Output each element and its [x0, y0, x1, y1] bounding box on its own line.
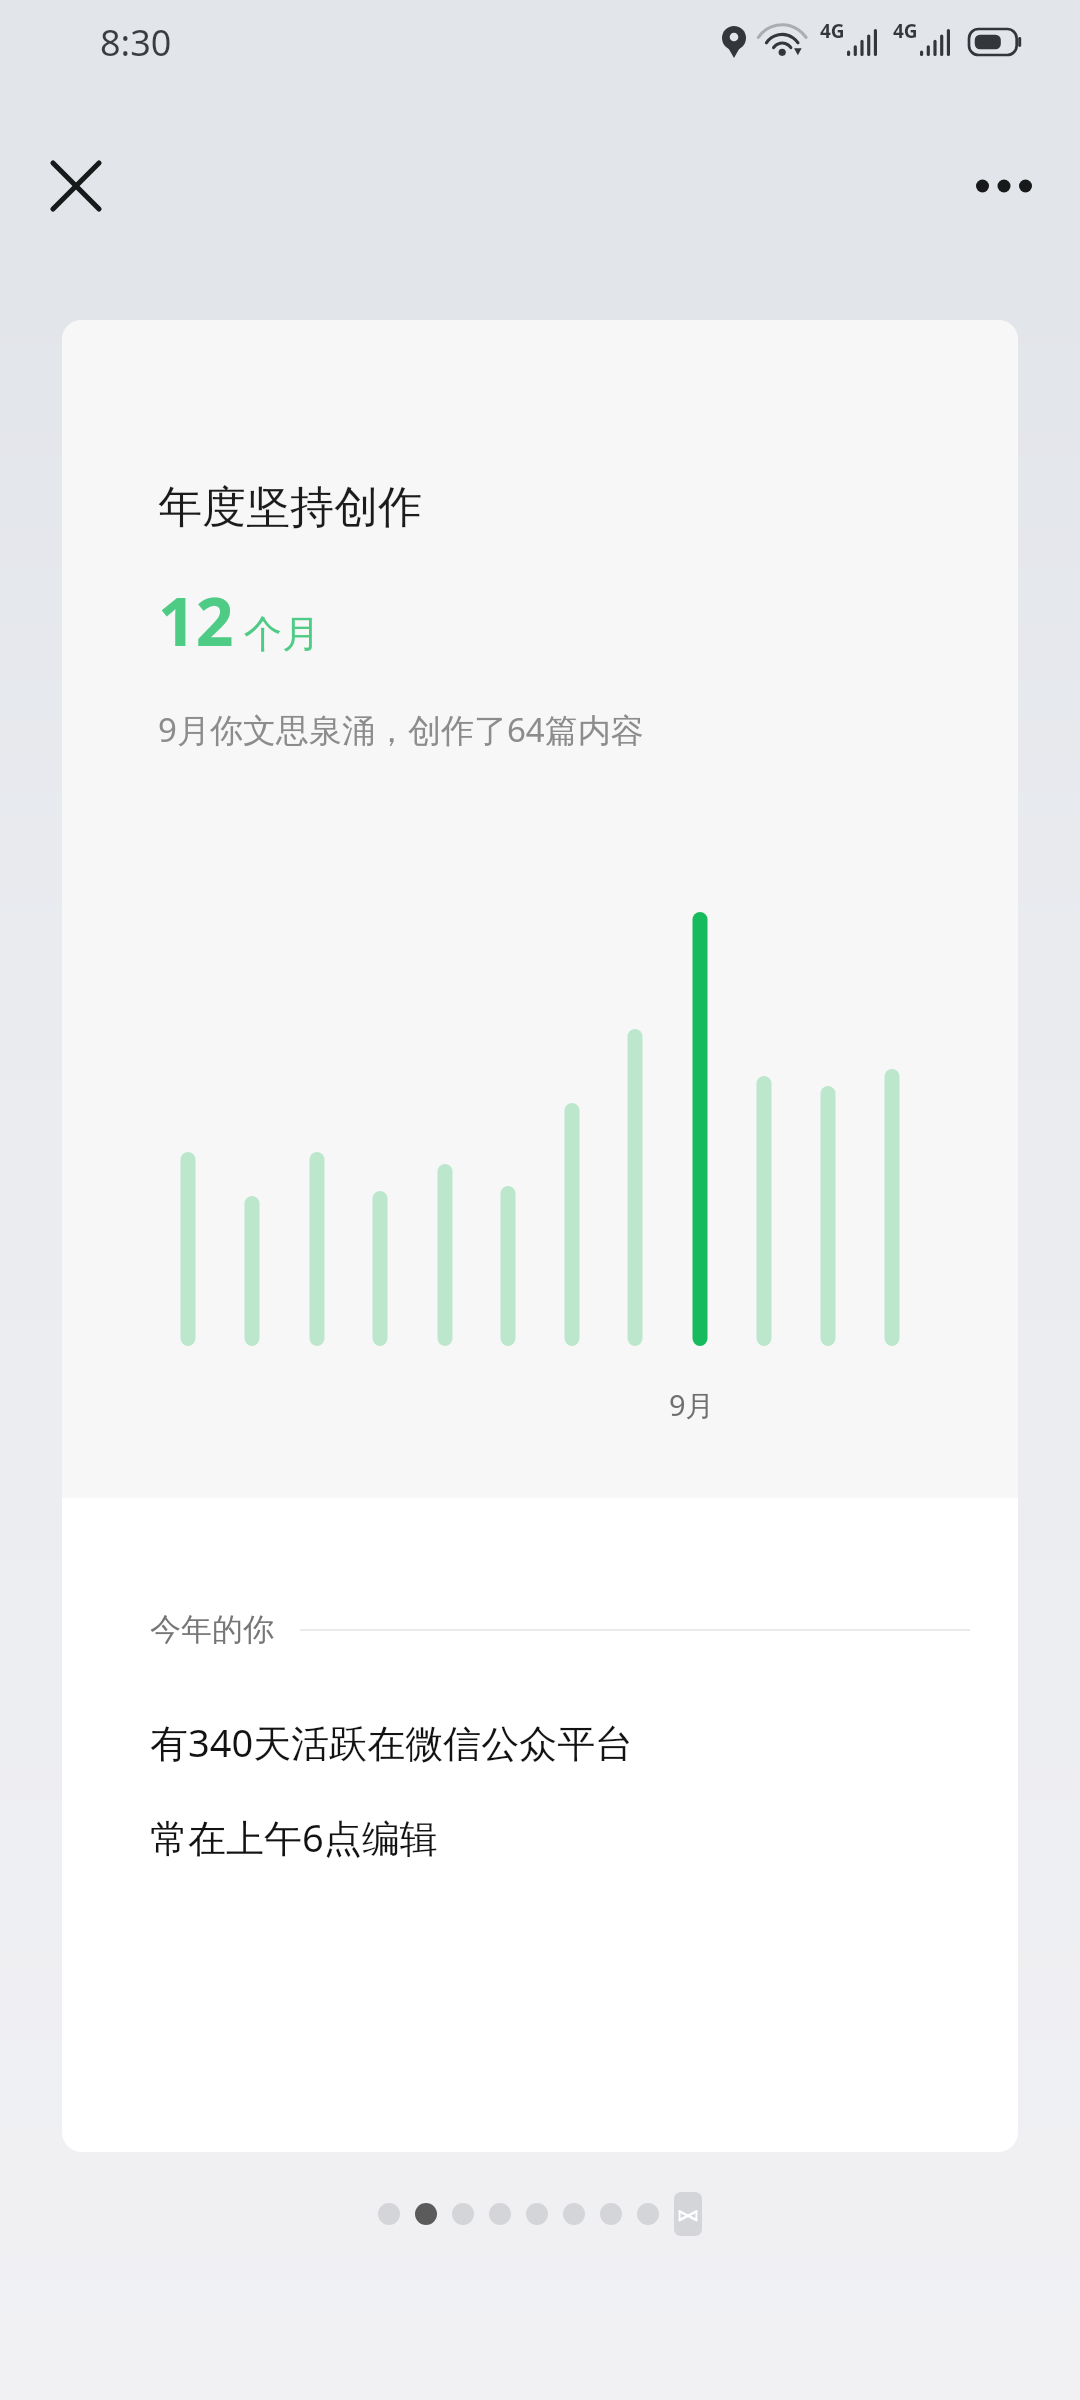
button[interactable]: Page 7	[600, 2203, 622, 2225]
staticText: 今年的你	[150, 1610, 274, 1649]
button[interactable]: Page 6	[563, 2203, 585, 2225]
staticText: 12	[158, 575, 234, 665]
button[interactable]: Page 1	[378, 2203, 400, 2225]
staticText: 个月	[244, 610, 320, 658]
staticText: 有340天活跃在微信公众平台	[150, 1716, 634, 1768]
button[interactable]: Page 3	[452, 2203, 474, 2225]
button[interactable]: More options	[956, 138, 1052, 234]
button[interactable]: Close	[28, 138, 124, 234]
button[interactable]: Page 5	[526, 2203, 548, 2225]
staticText: 常在上午6点编辑	[150, 1811, 438, 1863]
button[interactable]: 年度坚持创作	[62, 320, 1018, 2152]
button[interactable]: Gift card	[674, 2192, 702, 2236]
button[interactable]: Page 4	[489, 2203, 511, 2225]
staticText: 4G	[893, 18, 918, 44]
staticText: 9月你文思泉涌，创作了64篇内容	[158, 707, 644, 752]
staticText: 4G	[820, 18, 845, 44]
staticText: 年度坚持创作	[158, 480, 422, 535]
staticText: 8:30	[100, 18, 172, 67]
button[interactable]: Page 2	[415, 2203, 437, 2225]
button[interactable]: Page 8	[637, 2203, 659, 2225]
staticText: 9月	[669, 1385, 715, 1425]
